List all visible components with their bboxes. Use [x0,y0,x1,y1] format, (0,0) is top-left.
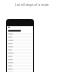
staticText: List all stops of a route [0,3,64,7]
button[interactable] [7,20,33,72]
